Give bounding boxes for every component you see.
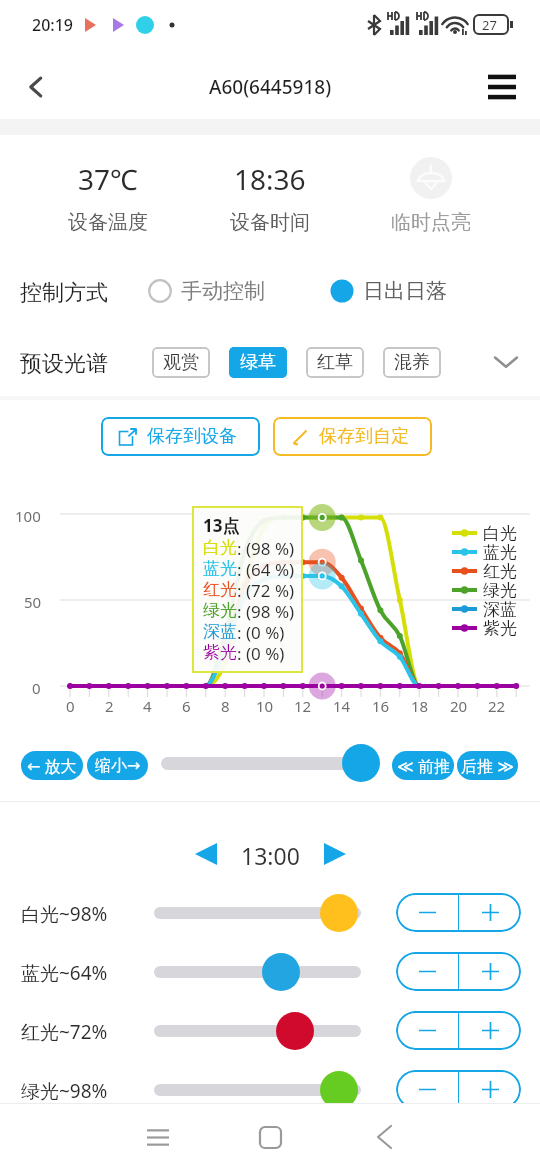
button[interactable]: Increase — [459, 1070, 521, 1103]
staticText: 20 — [450, 696, 468, 716]
staticText: 13点 — [203, 514, 240, 537]
staticText: 绿光~98% — [21, 1078, 108, 1103]
staticText: 深蓝 — [203, 621, 237, 642]
staticText: 预设光谱 — [20, 350, 108, 378]
staticText: 设备温度 — [68, 210, 148, 235]
button[interactable]: Time slider — [342, 744, 380, 782]
staticText: 红光 — [203, 579, 237, 600]
staticText: : (0 %) — [237, 642, 285, 663]
staticText: : (0 %) — [237, 621, 285, 642]
button[interactable]: 缩小→ — [87, 751, 148, 780]
staticText: 紫光 — [483, 618, 517, 637]
staticText: 红光~72% — [21, 1019, 108, 1045]
staticText: 白光 — [483, 523, 517, 542]
staticText: 设备时间 — [230, 210, 310, 235]
staticText: 观赏 — [163, 351, 199, 374]
staticText: 2 — [105, 696, 114, 716]
staticText: 100 — [15, 506, 41, 526]
staticText: 10 — [256, 696, 274, 716]
button[interactable]: 临时点亮 — [381, 135, 481, 245]
button[interactable]: 红光~72% slider — [276, 1012, 314, 1050]
staticText: 紫光 — [203, 642, 237, 663]
button[interactable]: 红草 — [306, 347, 364, 378]
button[interactable]: 白光~98% slider — [320, 894, 358, 932]
button[interactable]: 观赏 — [152, 347, 210, 378]
button[interactable]: Expand — [486, 342, 526, 382]
button[interactable]: 保存到自定 — [273, 417, 432, 456]
button[interactable]: Decrease — [396, 1070, 458, 1103]
button[interactable]: Home — [250, 1117, 290, 1157]
button[interactable]: Increase — [459, 1011, 521, 1050]
staticText: 蓝光 — [203, 558, 237, 579]
button[interactable]: Decrease — [396, 893, 458, 932]
staticText: 16 — [372, 696, 390, 716]
staticText: 白光 — [203, 537, 237, 558]
button[interactable]: 后推 ≫ — [457, 751, 518, 780]
staticText: 红草 — [317, 351, 353, 374]
staticText: 日出日落 — [363, 278, 447, 304]
button[interactable]: 蓝光~64% slider — [262, 953, 300, 991]
staticText: 27 — [482, 16, 497, 34]
staticText: 混养 — [394, 351, 430, 374]
staticText: : (64 %) — [237, 558, 295, 579]
button[interactable]: 绿光~98% slider — [320, 1071, 358, 1103]
button[interactable]: 混养 — [383, 347, 441, 378]
button[interactable]: Back — [8, 59, 64, 115]
staticText: 13:00 — [241, 840, 300, 871]
staticText: 20:19 — [32, 14, 73, 36]
staticText: 18 — [411, 696, 429, 716]
staticText: 红光 — [483, 561, 517, 580]
staticText: 后推 ≫ — [461, 755, 514, 777]
staticText: 绿草 — [240, 351, 276, 374]
button[interactable]: 保存到设备 — [101, 417, 260, 456]
button[interactable]: 日出日落 — [330, 272, 447, 310]
staticText: 缩小→ — [95, 756, 141, 776]
button[interactable]: ← 放大 — [21, 751, 83, 780]
staticText: 控制方式 — [20, 279, 108, 307]
button[interactable]: Back — [364, 1117, 404, 1157]
staticText: 0 — [66, 696, 75, 716]
staticText: 绿光 — [483, 580, 517, 599]
staticText: : (98 %) — [237, 537, 295, 558]
button[interactable]: Increase — [459, 952, 521, 991]
staticText: ≪ 前推 — [397, 755, 450, 777]
staticText: 0 — [32, 678, 41, 698]
staticText: 4 — [143, 696, 152, 716]
staticText: : (98 %) — [237, 600, 295, 621]
staticText: 12 — [294, 696, 312, 716]
staticText: 14 — [333, 696, 351, 716]
button[interactable]: 绿草 — [229, 347, 287, 378]
button[interactable]: 手动控制 — [148, 272, 265, 310]
staticText: 50 — [24, 592, 42, 612]
button[interactable]: Increase — [459, 893, 521, 932]
staticText: 白光~98% — [21, 901, 108, 927]
staticText: 37℃ — [78, 160, 138, 198]
staticText: 绿光 — [203, 600, 237, 621]
button[interactable]: Decrease — [396, 1011, 458, 1050]
staticText: 18:36 — [234, 160, 306, 198]
staticText: 深蓝 — [483, 599, 517, 618]
staticText: : (72 %) — [237, 579, 295, 600]
staticText: 临时点亮 — [391, 210, 471, 235]
button[interactable]: Previous hour — [186, 834, 226, 874]
button[interactable]: Menu — [474, 59, 530, 115]
button[interactable]: Next hour — [315, 834, 355, 874]
staticText: A60(6445918) — [209, 74, 332, 100]
staticText: 手动控制 — [181, 278, 265, 304]
staticText: 8 — [221, 696, 230, 716]
staticText: ← 放大 — [27, 755, 77, 777]
button[interactable]: Recents — [138, 1117, 178, 1157]
staticText: 6 — [182, 696, 191, 716]
staticText: 22 — [488, 696, 506, 716]
staticText: 保存到设备 — [147, 425, 237, 448]
button[interactable]: ≪ 前推 — [392, 751, 454, 780]
staticText: 蓝光 — [483, 542, 517, 561]
button[interactable]: Decrease — [396, 952, 458, 991]
staticText: 蓝光~64% — [21, 960, 108, 986]
staticText: 保存到自定 — [319, 425, 409, 448]
